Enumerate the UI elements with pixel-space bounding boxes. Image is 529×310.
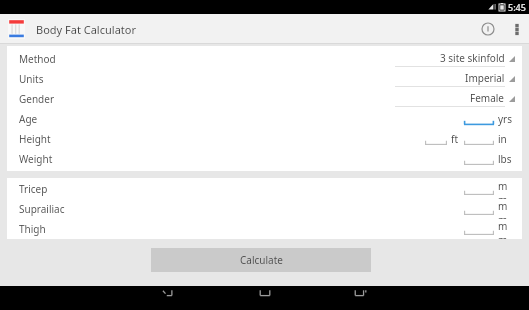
button[interactable]: Thigh: [7, 219, 522, 239]
staticText: Age: [19, 112, 38, 126]
button[interactable]: More options: [505, 14, 529, 44]
staticText: Gender: [19, 92, 55, 106]
button[interactable]: Back: [154, 286, 184, 310]
staticText: ft: [451, 132, 459, 146]
staticText: Weight: [19, 152, 53, 166]
staticText: mm: [498, 199, 515, 219]
staticText: Female: [470, 91, 505, 105]
button[interactable]: Suprailiac: [7, 199, 522, 219]
staticText: Imperial: [465, 71, 505, 85]
staticText: Height: [19, 132, 51, 146]
staticText: Body Fat Calculator: [36, 22, 136, 37]
button[interactable]: Weight: [7, 149, 522, 169]
staticText: Units: [19, 72, 44, 86]
button[interactable]: Gender: [7, 89, 522, 109]
button[interactable]: Home: [250, 286, 280, 310]
staticText: Calculate: [240, 253, 283, 267]
button[interactable]: Tricep: [7, 179, 522, 199]
button[interactable]: Height: [7, 129, 522, 149]
staticText: mm: [498, 219, 515, 239]
staticText: lbs: [498, 152, 512, 166]
button[interactable]: Recent apps: [346, 286, 376, 310]
staticText: Method: [19, 52, 56, 66]
button[interactable]: Age: [7, 109, 522, 129]
staticText: Tricep: [19, 182, 48, 196]
button[interactable]: Calculate: [151, 248, 371, 272]
staticText: Thigh: [19, 222, 46, 236]
staticText: 3 site skinfold: [440, 51, 505, 65]
staticText: mm: [498, 179, 515, 199]
button[interactable]: Info: [471, 14, 505, 44]
staticText: yrs: [498, 112, 513, 126]
button[interactable]: Method: [7, 49, 522, 69]
staticText: 5:45: [508, 1, 526, 13]
staticText: Suprailiac: [19, 202, 65, 216]
staticText: in: [498, 132, 507, 146]
button[interactable]: Units: [7, 69, 522, 89]
